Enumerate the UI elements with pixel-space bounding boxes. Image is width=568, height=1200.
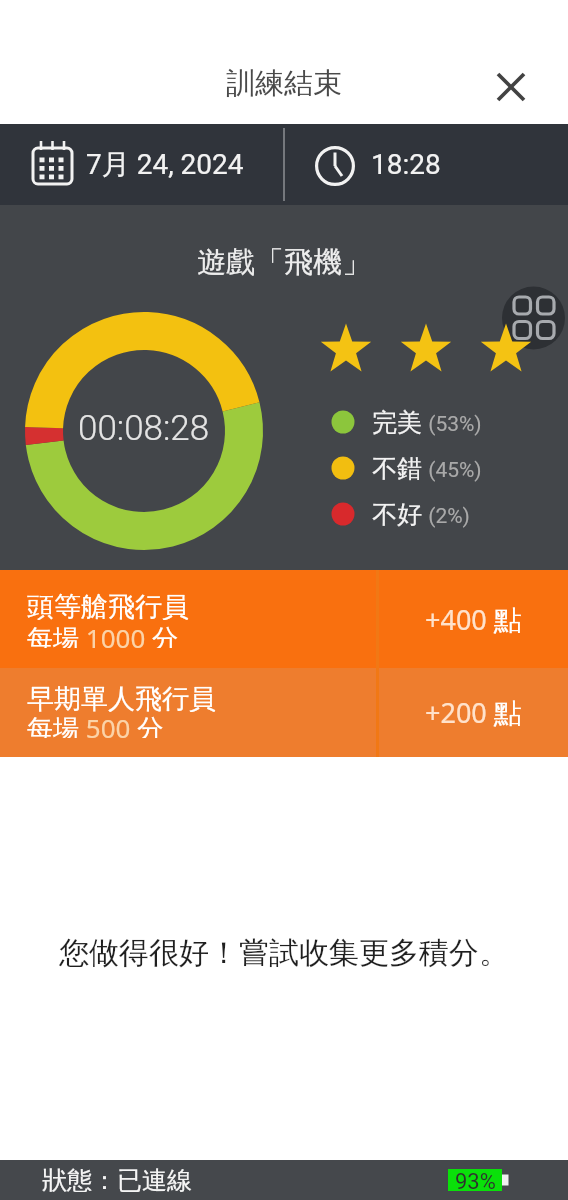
button[interactable] [485,61,537,113]
button[interactable] [0,668,568,757]
staticText: 00:08:28 [78,408,210,449]
staticText: 每場 500 分 [27,710,164,738]
staticText: +200 點 [425,694,522,731]
button[interactable] [0,124,284,205]
staticText: 早期單人飛行員 [27,682,216,712]
staticText: 93% [455,1169,496,1191]
staticText: +400 點 [425,601,522,638]
staticText: 完美 (53%) [372,407,482,438]
staticText: 訓練結束 [226,65,342,102]
staticText: 您做得很好！嘗試收集更多積分。 [59,934,509,972]
staticText: 18:28 [371,148,441,181]
button[interactable] [0,570,568,668]
staticText: 遊戲「飛機」 [197,244,371,281]
button[interactable] [502,286,566,350]
staticText: 狀態：已連線 [42,1165,192,1196]
staticText: 不錯 (45%) [372,453,482,484]
staticText: 不好 (2%) [372,499,470,530]
button[interactable] [284,124,568,205]
staticText: 每場 1000 分 [27,620,179,648]
staticText: 7月 24, 2024 [86,147,244,182]
staticText: 頭等艙飛行員 [27,590,189,620]
